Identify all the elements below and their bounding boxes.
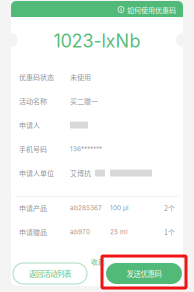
- button[interactable]: 返回活动列表: [13, 263, 87, 284]
- staticText: 25 ml: [110, 228, 128, 236]
- staticText: ab970: [70, 228, 90, 236]
- staticText: 活动名称: [19, 96, 47, 106]
- staticText: 发送优惠码: [126, 268, 161, 279]
- staticText: 艾博抗: [70, 168, 91, 178]
- button[interactable]: 如何使用优惠码: [11, 1, 183, 17]
- button[interactable]: 发送优惠码: [106, 263, 182, 284]
- staticText: 1个: [164, 227, 175, 237]
- staticText: 1023-lxNb: [53, 30, 140, 52]
- staticText: ab285367: [70, 204, 102, 212]
- staticText: 100 μl: [110, 204, 129, 212]
- staticText: 申请人: [19, 120, 40, 130]
- staticText: 收起: [91, 257, 105, 266]
- staticText: 申请赠品: [19, 227, 47, 237]
- staticText: 返回活动列表: [29, 268, 71, 279]
- staticText: 优惠码状态: [19, 72, 54, 82]
- staticText: 手机号码: [19, 144, 47, 154]
- staticText: 2个: [164, 203, 175, 213]
- button[interactable]: 收起: [90, 257, 106, 266]
- staticText: 申请人单位: [19, 168, 54, 178]
- staticText: 136*******: [70, 145, 102, 153]
- staticText: 申请产品: [19, 203, 47, 213]
- staticText: 如何使用优惠码: [127, 5, 176, 15]
- staticText: 未使用: [70, 72, 91, 82]
- staticText: 买二赠一: [70, 96, 98, 106]
